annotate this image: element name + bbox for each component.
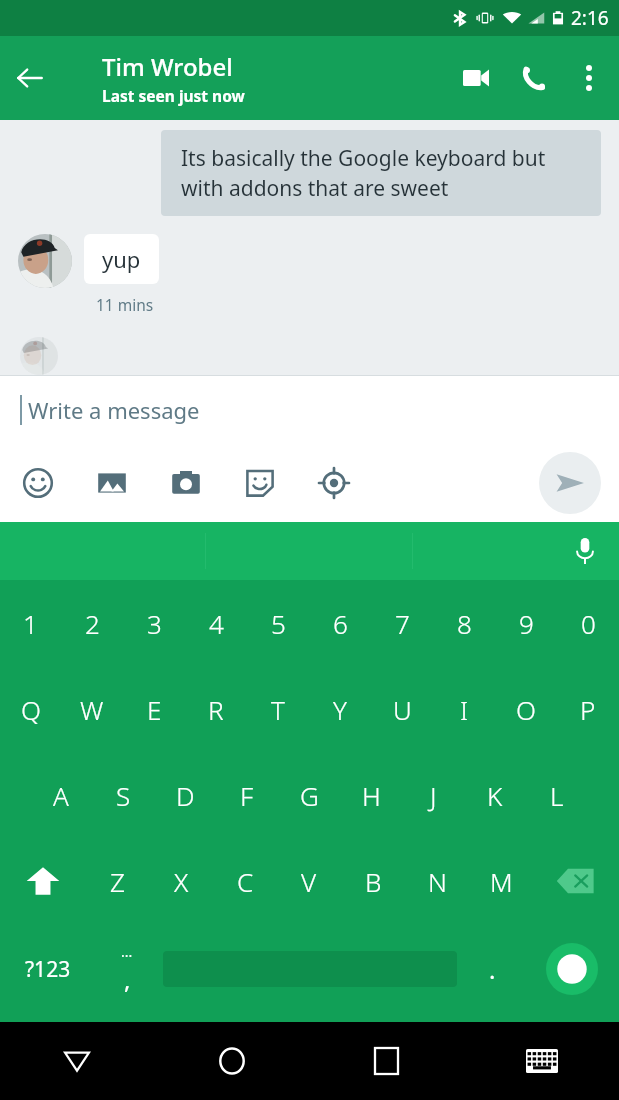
staticText: O	[516, 692, 536, 727]
staticText: 9	[519, 606, 534, 641]
staticText: N	[428, 864, 447, 899]
button[interactable]: C	[213, 838, 277, 924]
staticText: 6	[333, 606, 348, 641]
button[interactable]: .	[461, 924, 524, 1014]
staticText: D	[176, 778, 195, 813]
button[interactable]: P	[557, 666, 619, 752]
staticText: R	[208, 692, 224, 727]
button[interactable]: Y	[309, 666, 371, 752]
button[interactable]: 2	[61, 580, 123, 666]
staticText: ...	[121, 942, 133, 961]
staticText: V	[301, 864, 317, 899]
staticText: Last seen just now	[102, 85, 245, 106]
button[interactable]: K	[464, 752, 526, 838]
button[interactable]: Write a message	[0, 376, 619, 444]
staticText: I	[460, 692, 469, 727]
button[interactable]: X	[149, 838, 213, 924]
staticText: L	[550, 778, 564, 813]
staticText: J	[430, 778, 437, 813]
staticText: 4	[209, 606, 224, 641]
button[interactable]: Back	[0, 1022, 154, 1100]
button[interactable]: A	[30, 752, 92, 838]
staticText: Q	[21, 692, 41, 727]
button[interactable]: J	[402, 752, 464, 838]
button[interactable]: Voice input	[565, 531, 605, 571]
staticText: 2:16	[571, 5, 609, 31]
staticText: C	[237, 864, 254, 899]
button[interactable]: R	[185, 666, 247, 752]
button[interactable]: Z	[85, 838, 149, 924]
button[interactable]: G	[278, 752, 340, 838]
button[interactable]: 0	[557, 580, 619, 666]
button[interactable]: 5	[247, 580, 309, 666]
button[interactable]: B	[341, 838, 405, 924]
button[interactable]: D	[154, 752, 216, 838]
button[interactable]: Location	[314, 463, 354, 503]
button[interactable]: Emoji	[18, 463, 58, 503]
button[interactable]: S	[92, 752, 154, 838]
button[interactable]: I	[433, 666, 495, 752]
button[interactable]: W	[61, 666, 123, 752]
button[interactable]: yup	[84, 234, 159, 284]
button[interactable]: 6	[309, 580, 371, 666]
button[interactable]: F	[216, 752, 278, 838]
button[interactable]: Video call	[447, 36, 505, 120]
button[interactable]: Q	[0, 666, 61, 752]
button[interactable]: Tim Wrobel	[102, 50, 447, 106]
button[interactable]: More options	[563, 36, 615, 120]
staticText: 1	[23, 606, 38, 641]
button[interactable]: ...	[95, 924, 158, 1014]
button[interactable]: Home	[154, 1022, 309, 1100]
button[interactable]: 8	[433, 580, 495, 666]
button[interactable]: Shift	[0, 838, 85, 924]
button[interactable]: Sticker	[240, 463, 280, 503]
staticText: X	[174, 864, 189, 899]
button[interactable]: 9	[495, 580, 557, 666]
button[interactable]: O	[495, 666, 557, 752]
staticText: U	[393, 692, 412, 727]
button[interactable]: E	[123, 666, 185, 752]
staticText: 8	[457, 606, 472, 641]
button[interactable]: Switch keyboard	[464, 1022, 619, 1100]
button[interactable]: Camera	[166, 463, 206, 503]
button[interactable]: ?123	[0, 924, 95, 1014]
button[interactable]: N	[405, 838, 469, 924]
button[interactable]: T	[247, 666, 309, 752]
staticText: Write a message	[28, 395, 200, 425]
staticText: A	[53, 778, 69, 813]
button[interactable]: 3	[123, 580, 185, 666]
button[interactable]: M	[469, 838, 533, 924]
button[interactable]: Gallery	[92, 463, 132, 503]
staticText: F	[240, 778, 254, 813]
button[interactable]: V	[277, 838, 341, 924]
button[interactable]: Emoji keyboard	[524, 924, 619, 1014]
button[interactable]: 7	[371, 580, 433, 666]
staticText: G	[300, 778, 319, 813]
button[interactable]: H	[340, 752, 402, 838]
button[interactable]: Call	[505, 36, 563, 120]
staticText: Y	[333, 692, 347, 727]
staticText: .	[489, 953, 496, 986]
button[interactable]: Space	[158, 924, 461, 1014]
staticText: Tim Wrobel	[102, 50, 233, 83]
staticText: yup	[102, 244, 141, 274]
button[interactable]: 4	[185, 580, 247, 666]
button[interactable]: Send	[539, 452, 601, 514]
staticText: 0	[581, 606, 596, 641]
button[interactable]	[413, 522, 619, 580]
button[interactable]: Back	[0, 36, 60, 120]
button[interactable]: Recents	[309, 1022, 464, 1100]
button[interactable]: Backspace	[533, 838, 619, 924]
button[interactable]: L	[526, 752, 588, 838]
staticText: Z	[110, 864, 125, 899]
staticText: E	[147, 692, 162, 727]
staticText: Its basically the Google keyboard but wi…	[181, 144, 581, 202]
button[interactable]: Its basically the Google keyboard but wi…	[161, 130, 601, 216]
staticText: K	[487, 778, 503, 813]
staticText: 2	[85, 606, 100, 641]
staticText: S	[116, 778, 131, 813]
button[interactable]: 1	[0, 580, 61, 666]
button[interactable]: U	[371, 666, 433, 752]
